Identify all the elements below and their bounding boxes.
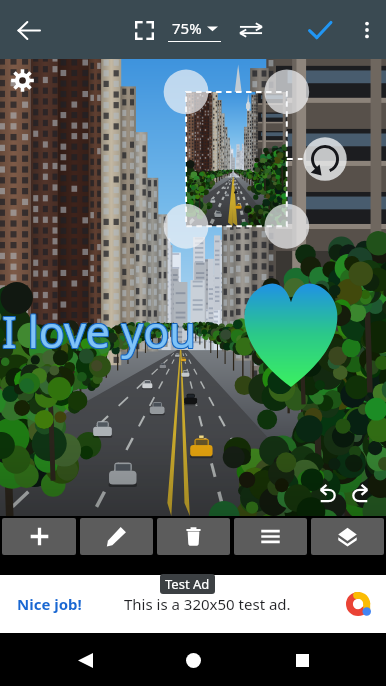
- button[interactable]: Recents: [278, 636, 326, 684]
- button[interactable]: Delete: [157, 518, 230, 555]
- button[interactable]: Back: [61, 636, 109, 684]
- button[interactable]: Redo: [344, 476, 380, 512]
- staticText: I love you: [3, 301, 197, 360]
- button[interactable]: Swap: [231, 10, 271, 50]
- staticText: I love you: [2, 303, 196, 362]
- button[interactable]: Back: [0, 2, 56, 58]
- button[interactable]: More options: [348, 11, 386, 49]
- staticText: Nice job!: [17, 594, 82, 614]
- staticText: I love you: [1, 303, 195, 362]
- staticText: This is a 320x50 test ad.: [124, 594, 291, 614]
- button[interactable]: Edit: [80, 518, 153, 555]
- staticText: I love you: [2, 302, 196, 361]
- button[interactable]: Apply: [298, 8, 342, 52]
- button[interactable]: Undo: [308, 476, 344, 512]
- button[interactable]: Settings: [8, 66, 36, 94]
- staticText: I love you: [3, 302, 197, 361]
- staticText: I love you: [1, 302, 195, 361]
- staticText: I love you: [3, 303, 197, 362]
- staticText: I love you: [2, 301, 196, 360]
- button[interactable]: 75%: [168, 18, 221, 42]
- button[interactable]: Layers: [311, 518, 384, 555]
- staticText: Test Ad: [165, 575, 210, 593]
- staticText: 75%: [172, 18, 202, 38]
- button[interactable]: Add: [2, 518, 76, 555]
- staticText: I love you: [1, 301, 195, 360]
- button[interactable]: Home: [169, 636, 217, 684]
- button[interactable]: Fit to screen: [124, 10, 164, 50]
- button[interactable]: Menu: [234, 518, 307, 555]
